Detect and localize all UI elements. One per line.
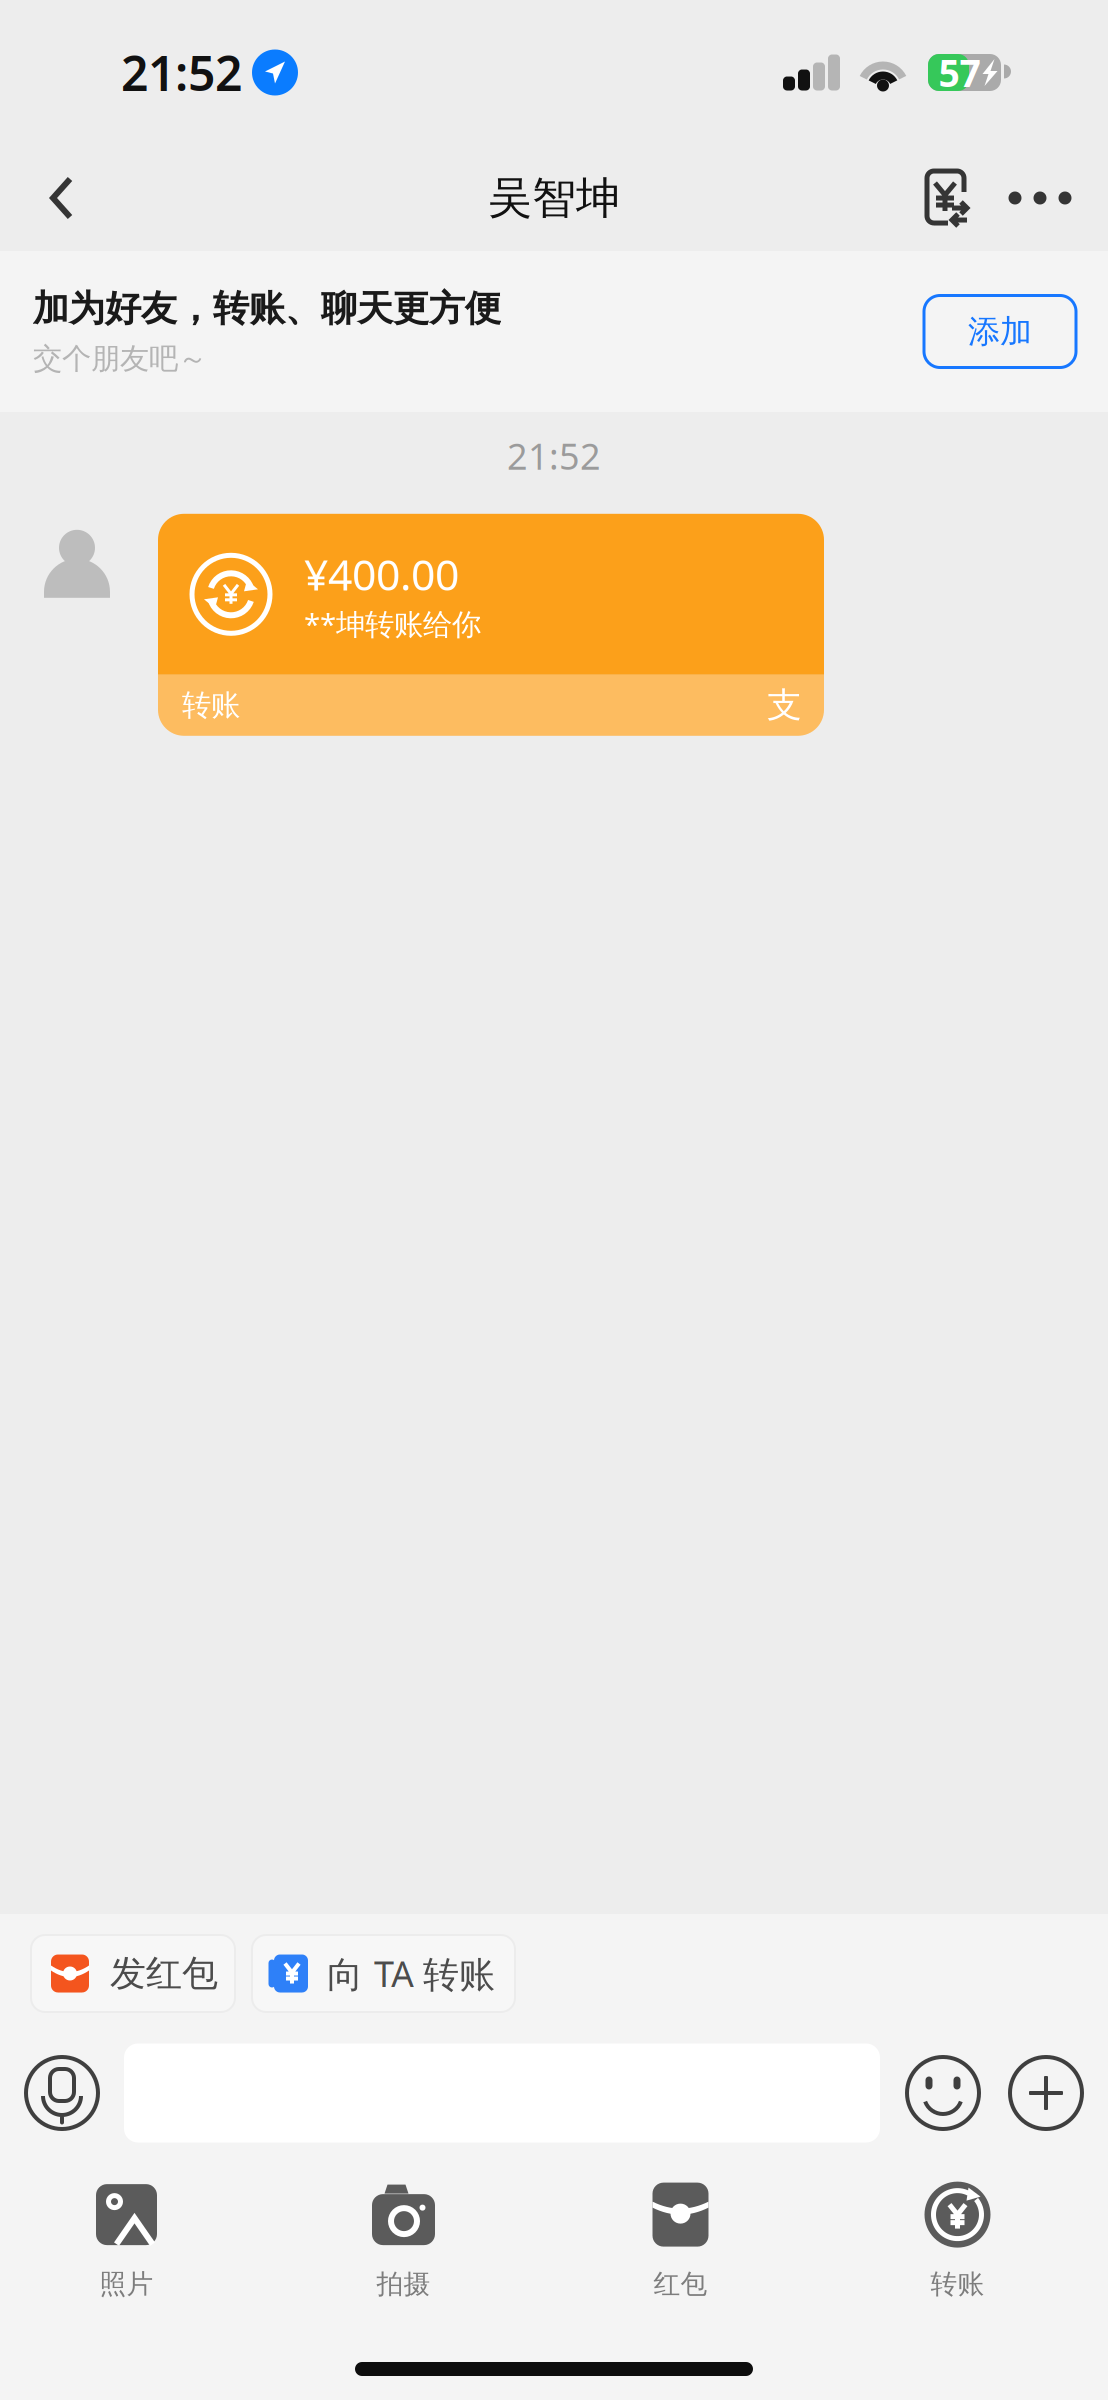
staticText: 向 TA 转账 [327, 1950, 495, 1997]
button[interactable]: More [986, 145, 1094, 251]
staticText: 交个朋友吧～ [33, 341, 207, 377]
staticText: 红包 [653, 2268, 707, 2300]
staticText: ¥400.00 [304, 545, 459, 602]
button[interactable]: 转账 [819, 2182, 1096, 2300]
staticText: 发红包 [110, 1951, 218, 1996]
button[interactable]: 拍摄 [265, 2182, 542, 2300]
button[interactable]: Back [0, 145, 158, 251]
button[interactable]: 照片 [0, 2182, 265, 2300]
staticText: 21:52 [507, 432, 601, 480]
staticText: 加为好友，转账、聊天更方便 [33, 286, 501, 331]
button[interactable]: ¥400.00 [158, 514, 824, 736]
staticText: 支 [767, 684, 802, 727]
staticText: 拍摄 [376, 2268, 430, 2300]
staticText: 转账 [930, 2268, 984, 2300]
staticText: 转账 [182, 687, 240, 723]
button[interactable]: 红包 [542, 2182, 819, 2300]
staticText: 添加 [968, 312, 1032, 351]
staticText: 照片 [99, 2268, 153, 2300]
button[interactable]: Transfer [908, 145, 986, 251]
button[interactable]: More options [1010, 2057, 1082, 2129]
staticText: **坤转账给你 [304, 604, 481, 643]
button[interactable]: 向 TA 转账 [252, 1935, 515, 2012]
staticText: 吴智坤 [488, 171, 620, 225]
button[interactable]: Voice message [26, 2057, 98, 2129]
staticText: 57 [938, 48, 980, 97]
button[interactable]: 发红包 [31, 1935, 235, 2012]
button[interactable]: Emoji [907, 2057, 979, 2129]
staticText: 21:52 [121, 41, 242, 104]
button[interactable]: 添加 [924, 295, 1076, 367]
